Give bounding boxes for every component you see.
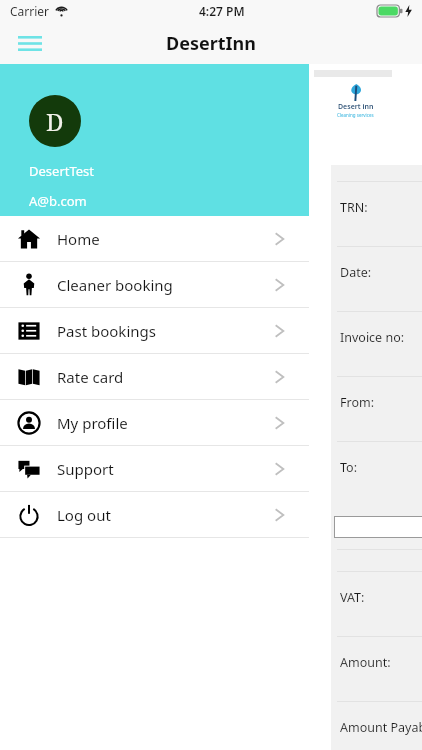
- staticText: Home: [57, 229, 100, 249]
- staticText: A@b.com: [29, 192, 87, 210]
- staticText: TRN:: [340, 199, 368, 216]
- button[interactable]: My profile: [0, 400, 309, 445]
- staticText: VAT:: [340, 589, 365, 606]
- staticText: Cleaning services: [337, 112, 374, 118]
- staticText: Cleaner booking: [57, 275, 173, 295]
- staticText: Invoice no:: [340, 329, 405, 346]
- staticText: To:: [340, 459, 357, 476]
- staticText: Rate card: [57, 367, 124, 387]
- staticText: Past bookings: [57, 321, 156, 341]
- staticText: DesertTest: [29, 162, 95, 180]
- staticText: Desert inn: [338, 102, 374, 112]
- button[interactable]: Open navigation menu: [10, 23, 50, 63]
- staticText: Log out: [57, 505, 111, 525]
- button[interactable]: Rate card: [0, 354, 309, 399]
- staticText: Support: [57, 459, 114, 479]
- staticText: From:: [340, 394, 375, 411]
- button[interactable]: Past bookings: [0, 308, 309, 353]
- button[interactable]: Log out: [0, 492, 309, 537]
- staticText: My profile: [57, 413, 128, 433]
- button[interactable]: Support: [0, 446, 309, 491]
- staticText: Carrier: [10, 3, 50, 19]
- staticText: 4:27 PM: [199, 3, 245, 19]
- button[interactable]: Home: [0, 216, 309, 261]
- button[interactable]: Cleaner booking: [0, 262, 309, 307]
- staticText: Amount Payable:: [340, 719, 422, 736]
- staticText: DesertInn: [166, 31, 256, 56]
- staticText: D: [46, 105, 64, 138]
- staticText: Amount:: [340, 654, 391, 671]
- staticText: Date:: [340, 264, 372, 281]
